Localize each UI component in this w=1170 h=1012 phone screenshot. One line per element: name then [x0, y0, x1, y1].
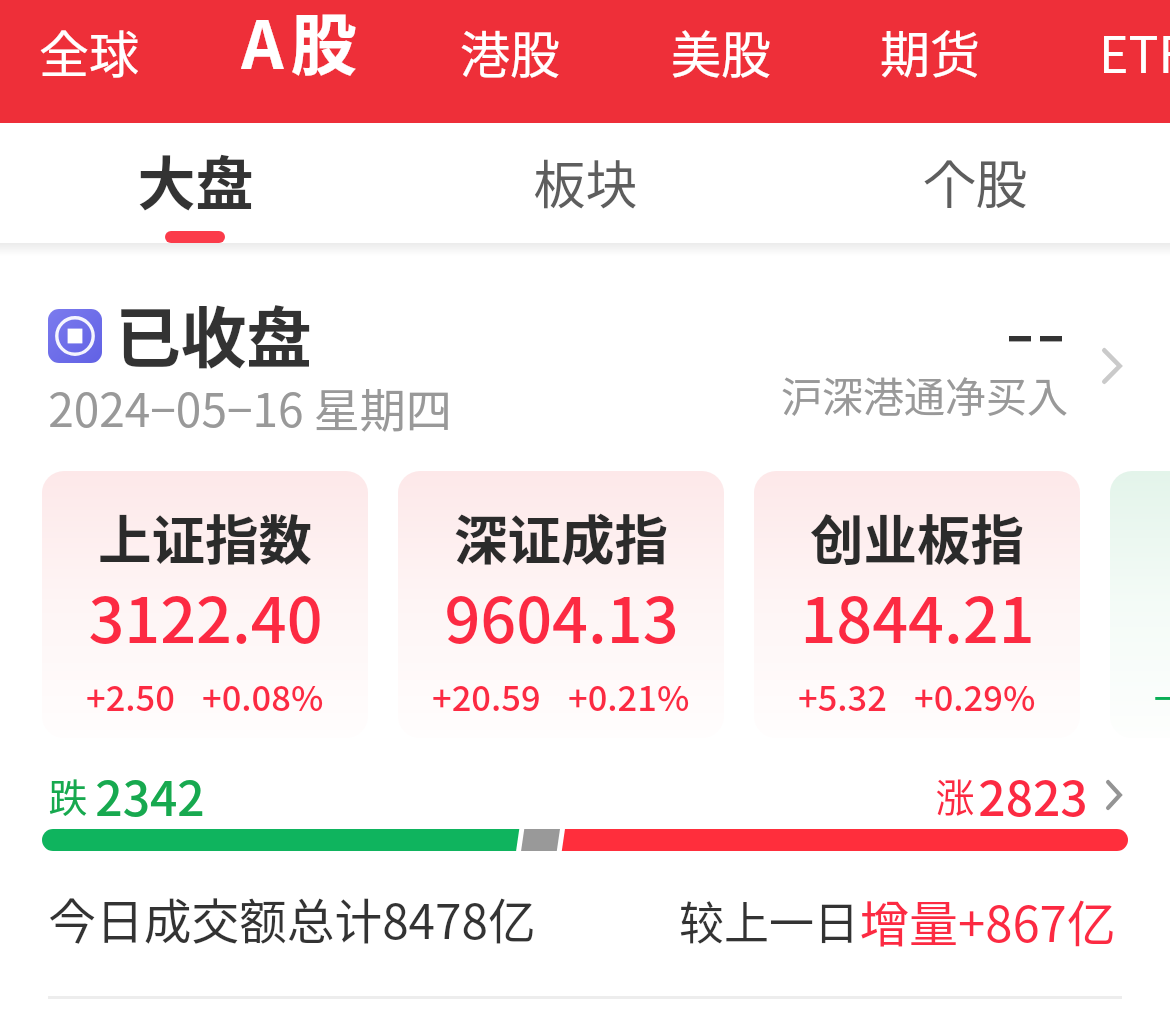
staticText: +0.29% — [914, 671, 1036, 711]
staticText: 创业板指 — [810, 498, 1024, 575]
button[interactable]: 板块 — [390, 121, 780, 241]
staticText: 上证指数 — [98, 498, 312, 575]
staticText: +5.32 — [798, 671, 887, 711]
button[interactable]: 创业板指 — [754, 471, 1080, 738]
staticText: +0.21% — [568, 671, 690, 711]
staticText: 涨 — [935, 767, 975, 823]
button[interactable]: 大盘 — [0, 120, 390, 240]
staticText: 沪深港通净买入 — [781, 364, 1068, 423]
button[interactable]: 深证成指 — [398, 471, 724, 738]
staticText: 港股 — [460, 15, 560, 87]
button[interactable]: ETF — [1067, 0, 1170, 106]
staticText: 2024−05−16 星期四 — [48, 374, 452, 441]
button[interactable]: 美股 — [646, 0, 796, 106]
staticText: +2.50 — [86, 671, 175, 711]
staticText: 个股 — [923, 144, 1028, 219]
staticText: 板块 — [533, 144, 638, 219]
button[interactable]: 沪深港通净买入详情 — [1084, 338, 1140, 394]
button[interactable]: 个股 — [780, 121, 1170, 241]
staticText: 9604.13 — [444, 570, 679, 660]
staticText: 2823 — [978, 760, 1088, 830]
button[interactable]: 港股 — [435, 0, 585, 106]
staticText: 今日成交额总计8478亿 — [48, 884, 536, 953]
staticText: 跌 — [48, 767, 88, 823]
staticText: 全球 — [39, 15, 139, 87]
staticText: A股 — [241, 0, 364, 88]
button[interactable]: 跌 — [30, 755, 270, 835]
staticText: 3122.40 — [88, 570, 323, 660]
staticText: ETF — [1099, 15, 1170, 87]
staticText: 1844.21 — [800, 570, 1035, 660]
staticText: 较上一日 — [679, 888, 860, 953]
button[interactable]: 上证指数 — [42, 471, 368, 738]
button[interactable]: 科创50 — [1110, 471, 1170, 738]
staticText: 美股 — [671, 15, 771, 87]
staticText: 期货 — [880, 15, 980, 87]
other: 暂无数据 — [990, 310, 1090, 366]
staticText: 深证成指 — [454, 498, 668, 575]
staticText: +0.08% — [202, 671, 324, 711]
staticText: +20.59 — [432, 671, 541, 711]
staticText: 已收盘 — [115, 286, 312, 381]
staticText: 2342 — [95, 760, 205, 830]
button[interactable]: 期货 — [855, 0, 1005, 106]
button[interactable]: 涨跌家数详情 — [1086, 767, 1142, 823]
staticText: 大盘 — [137, 138, 254, 222]
button[interactable]: A股 — [207, 0, 397, 95]
button[interactable]: 涨 — [900, 755, 1130, 835]
staticText: −8.08 — [1154, 671, 1170, 711]
staticText: 增量+867亿 — [860, 885, 1116, 956]
button[interactable]: 全球 — [14, 0, 164, 106]
